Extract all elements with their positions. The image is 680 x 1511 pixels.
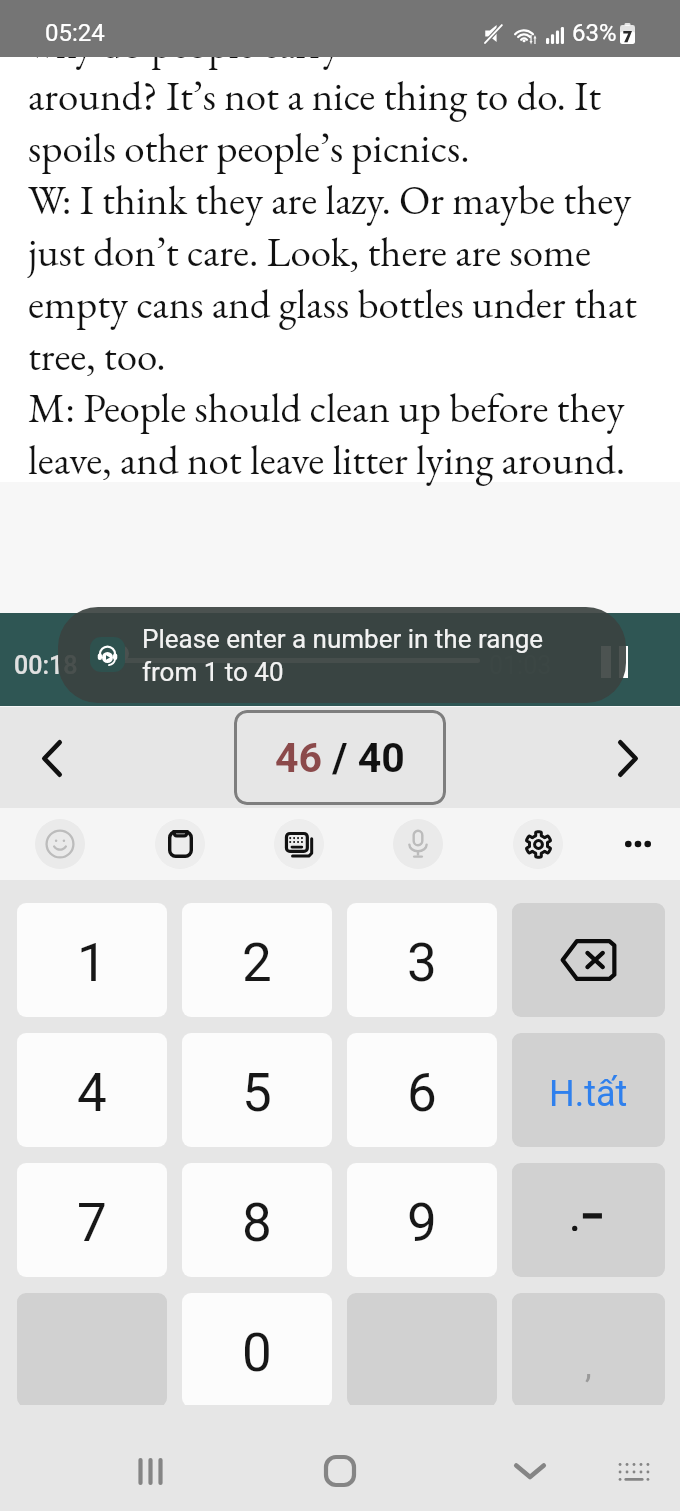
button[interactable]: H.tất [512, 1033, 665, 1147]
button[interactable]: 6 [347, 1033, 497, 1147]
button[interactable]: Backspace [512, 903, 665, 1017]
staticText: 6 [407, 1062, 437, 1124]
staticText: 5 [242, 1062, 272, 1124]
staticText: 00:18 [14, 651, 78, 680]
button[interactable]: Emoji [35, 819, 85, 869]
button[interactable]: Please enter a number in the range from … [58, 607, 626, 703]
button[interactable]: More options [613, 819, 663, 869]
button[interactable]: 46 / 40 [234, 710, 446, 805]
staticText: 4 [77, 1062, 107, 1124]
button[interactable]: 00:18 [0, 613, 680, 706]
staticText: , [585, 1346, 592, 1386]
button[interactable]: Home [307, 1438, 373, 1504]
staticText: why do people carry around? It’s not a n… [28, 18, 637, 486]
button[interactable]: 2 [182, 903, 332, 1017]
button[interactable]: , [512, 1293, 665, 1407]
button[interactable]: Show keyboard [601, 1438, 667, 1504]
button[interactable]: Next question [597, 727, 659, 789]
staticText: Please enter a number in the range from … [142, 622, 544, 688]
button[interactable]: 7 [17, 1163, 167, 1277]
staticText: 9 [407, 1192, 437, 1254]
staticText: 46 / 40 [275, 734, 405, 782]
button[interactable]: 5 [182, 1033, 332, 1147]
button[interactable]: Switch keyboard [274, 819, 324, 869]
button[interactable]: Voice input [393, 819, 443, 869]
button[interactable]: 4 [17, 1033, 167, 1147]
button[interactable]: 0 [182, 1293, 332, 1407]
staticText: 05:24 [45, 19, 105, 47]
staticText: 0 [242, 1322, 272, 1384]
button[interactable]: Recent apps [117, 1438, 183, 1504]
staticText: H.tất [549, 1073, 628, 1115]
staticText: 7 [77, 1192, 107, 1254]
staticText: 2 [242, 932, 272, 994]
button[interactable]: 8 [182, 1163, 332, 1277]
button[interactable]: Previous question [21, 727, 83, 789]
staticText: 63% [572, 19, 617, 47]
button[interactable]: 9 [347, 1163, 497, 1277]
button[interactable]: Pause [601, 646, 628, 678]
button[interactable]: 1 [17, 903, 167, 1017]
staticText: 1 [77, 932, 107, 994]
button[interactable] [512, 1163, 665, 1277]
button[interactable]: 3 [347, 903, 497, 1017]
button[interactable]: Clipboard [155, 819, 205, 869]
staticText: 01:03 [489, 651, 552, 680]
button[interactable]: Audio [90, 637, 125, 672]
staticText: 3 [407, 932, 437, 994]
staticText: 8 [242, 1192, 272, 1254]
button[interactable]: Hide keyboard [497, 1438, 563, 1504]
button[interactable]: Settings [513, 819, 563, 869]
